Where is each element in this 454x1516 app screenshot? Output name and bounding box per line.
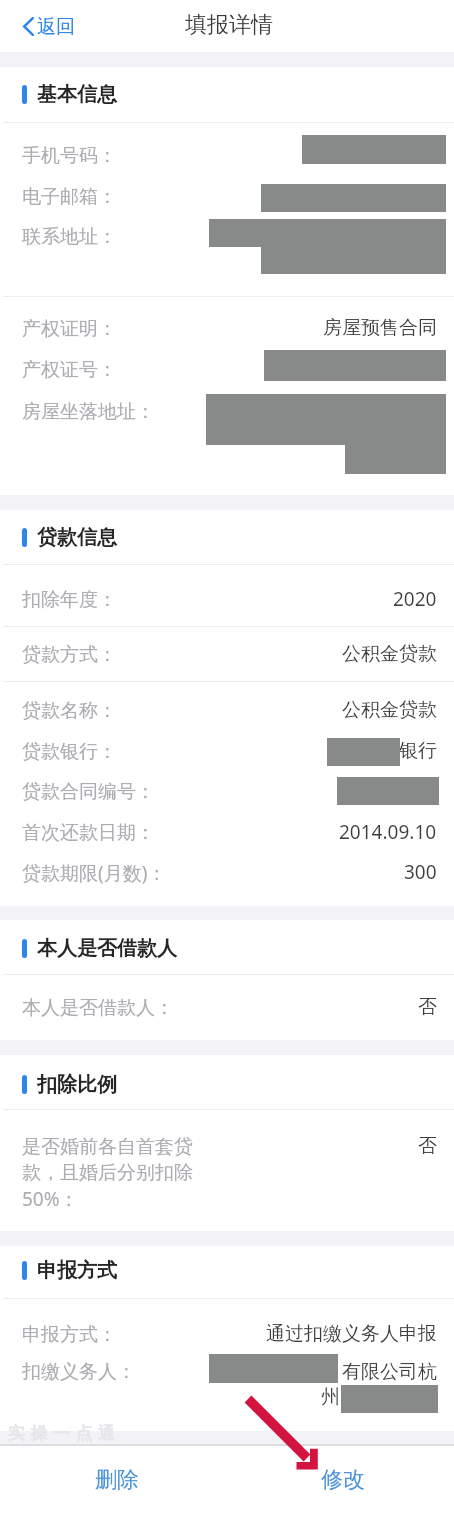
staticText: 填报详情 — [185, 11, 273, 39]
staticText: 贷款名称： — [22, 699, 117, 723]
button[interactable]: 贷款期限(月数)： — [0, 851, 454, 891]
staticText: 删除 — [95, 1466, 139, 1494]
staticText: 款，且婚后分别扣除 — [22, 1161, 193, 1185]
staticText: 房屋预售合同 — [323, 316, 437, 340]
button[interactable]: 本人是否借款人 — [0, 926, 454, 970]
button[interactable]: 扣除比例 — [0, 1062, 454, 1106]
staticText: 扣除比例 — [37, 1072, 117, 1097]
button[interactable]: 申报方式： — [0, 1313, 454, 1353]
button[interactable]: 返回 — [16, 8, 81, 44]
staticText: 房屋坐落地址： — [22, 400, 155, 424]
staticText: 实操一点通 — [8, 1423, 121, 1444]
button[interactable]: 产权证号： — [0, 348, 454, 388]
staticText: 手机号码： — [22, 144, 117, 168]
staticText: 300 — [404, 859, 437, 885]
staticText: 产权证明： — [22, 317, 117, 341]
button[interactable]: 电子邮箱： — [0, 175, 454, 215]
button[interactable]: 贷款信息 — [0, 515, 454, 559]
button[interactable]: 房屋坐落地址： — [0, 390, 454, 430]
staticText: 贷款银行： — [22, 740, 117, 764]
button[interactable]: 扣缴义务人： — [0, 1349, 454, 1419]
staticText: 扣缴义务人： — [22, 1360, 136, 1384]
staticText: 申报方式： — [22, 1323, 117, 1347]
staticText: 基本信息 — [37, 82, 117, 107]
staticText: 有限公司杭 — [342, 1360, 437, 1384]
staticText: 扣除年度： — [22, 588, 117, 612]
staticText: 首次还款日期： — [22, 821, 155, 845]
staticText: 修改 — [321, 1466, 365, 1494]
staticText: 2020 — [393, 586, 437, 612]
staticText: 通过扣缴义务人申报 — [266, 1322, 437, 1346]
button[interactable]: 产权证明： — [0, 307, 454, 347]
staticText: 银行 — [399, 739, 437, 763]
staticText: 公积金贷款 — [342, 698, 437, 722]
button[interactable]: 贷款合同编号： — [0, 770, 454, 810]
button[interactable]: 手机号码： — [0, 134, 454, 174]
staticText: 贷款信息 — [37, 525, 117, 550]
button[interactable]: 基本信息 — [0, 72, 454, 116]
staticText: 公积金贷款 — [342, 642, 437, 666]
button[interactable]: 贷款银行： — [0, 730, 454, 770]
staticText: 否 — [418, 995, 437, 1019]
staticText: 贷款方式： — [22, 643, 117, 667]
staticText: 贷款期限(月数)： — [22, 860, 167, 886]
button[interactable]: 贷款名称： — [0, 689, 454, 729]
staticText: 申报方式 — [37, 1258, 117, 1283]
staticText: 本人是否借款人： — [22, 996, 174, 1020]
button[interactable]: 修改 — [227, 1446, 454, 1516]
button[interactable]: 申报方式 — [0, 1248, 454, 1292]
staticText: 本人是否借款人 — [37, 936, 177, 961]
button[interactable]: 扣除年度： — [0, 578, 454, 618]
staticText: 50%： — [22, 1186, 79, 1212]
button[interactable]: 本人是否借款人： — [0, 986, 454, 1026]
button[interactable]: 贷款方式： — [0, 633, 454, 673]
button[interactable]: 首次还款日期： — [0, 811, 454, 851]
button[interactable]: 是否婚前各自首套贷 — [0, 1122, 454, 1218]
staticText: 州 — [321, 1385, 340, 1409]
button[interactable]: 联系地址： — [0, 215, 454, 255]
staticText: 电子邮箱： — [22, 185, 117, 209]
staticText: 贷款合同编号： — [22, 780, 155, 804]
staticText: 产权证号： — [22, 358, 117, 382]
staticText: 联系地址： — [22, 225, 117, 249]
staticText: 返回 — [37, 15, 75, 39]
button[interactable]: 删除 — [0, 1446, 227, 1516]
staticText: 2014.09.10 — [339, 819, 437, 845]
staticText: 否 — [418, 1134, 437, 1158]
staticText: 是否婚前各自首套贷 — [22, 1135, 193, 1159]
